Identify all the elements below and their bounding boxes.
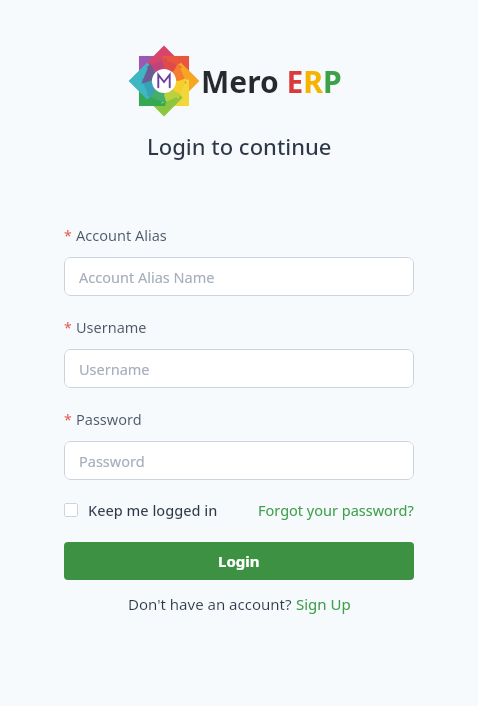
staticText: Account Alias Name bbox=[79, 267, 215, 287]
staticText: Keep me logged in bbox=[88, 500, 218, 520]
staticText: * bbox=[64, 410, 72, 429]
staticText: * bbox=[64, 318, 72, 337]
staticText: Username bbox=[79, 359, 150, 379]
staticText: Login to continue bbox=[147, 131, 332, 161]
button[interactable]: Password bbox=[64, 441, 414, 480]
button[interactable]: Keep me logged in bbox=[64, 500, 218, 520]
staticText: Login bbox=[218, 551, 260, 571]
staticText: Don't have an account? bbox=[128, 594, 296, 614]
staticText: Account Alias bbox=[76, 225, 167, 245]
button[interactable]: Forgot your password? bbox=[258, 500, 414, 520]
button[interactable]: Sign Up bbox=[296, 594, 351, 614]
button[interactable]: Username bbox=[64, 349, 414, 388]
staticText: Mero ERP bbox=[201, 61, 342, 102]
staticText: * bbox=[64, 226, 72, 245]
button[interactable]: Login bbox=[64, 542, 414, 580]
staticText: Username bbox=[76, 317, 147, 337]
button[interactable]: Account Alias Name bbox=[64, 257, 414, 296]
staticText: Forgot your password? bbox=[258, 500, 414, 520]
staticText: Sign Up bbox=[296, 594, 351, 614]
staticText: Password bbox=[76, 409, 142, 429]
staticText: Password bbox=[79, 451, 145, 471]
